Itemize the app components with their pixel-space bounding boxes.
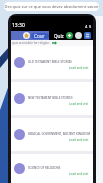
staticText: 5 xyxy=(89,24,92,29)
button[interactable]: Load and visit xyxy=(69,138,89,142)
staticText: 4 xyxy=(85,24,88,29)
button[interactable]: Account xyxy=(75,32,82,39)
button[interactable]: OLD TESTAMENT BIBLE STORIES xyxy=(11,46,93,79)
button[interactable]: Home xyxy=(23,32,30,39)
button[interactable]: Quiz xyxy=(54,33,64,39)
staticText: Quiz xyxy=(54,33,64,39)
staticText: SCIENCE OF RELIGIONS xyxy=(28,166,61,170)
button[interactable]: Load and visit xyxy=(69,172,89,176)
button[interactable]: Load and visit xyxy=(69,102,89,106)
button[interactable]: SCIENCE OF RELIGIONS xyxy=(11,154,93,183)
staticText: OLD TESTAMENT BIBLE STORIES xyxy=(28,60,72,64)
staticText: Des quiz sur ce que vous devez absolumen… xyxy=(4,4,99,9)
staticText: quiz accessible for religion xyxy=(12,41,50,45)
button[interactable]: Cours xyxy=(34,33,46,39)
button[interactable]: Load and visit xyxy=(69,66,89,70)
staticText: NEW TESTAMENT BIBLE STORIES xyxy=(28,96,73,100)
button[interactable]: Add xyxy=(66,32,73,39)
staticText: 13:30 xyxy=(12,22,25,29)
staticText: Cours xyxy=(34,33,46,39)
button[interactable]: Save xyxy=(84,32,91,39)
button[interactable]: BIBLICAL GOVERNMENT, ANCIENT KINGDOM xyxy=(11,118,93,151)
button[interactable]: NEW TESTAMENT BIBLE STORIES xyxy=(11,82,93,115)
staticText: BIBLICAL GOVERNMENT, ANCIENT KINGDOM xyxy=(28,132,91,136)
